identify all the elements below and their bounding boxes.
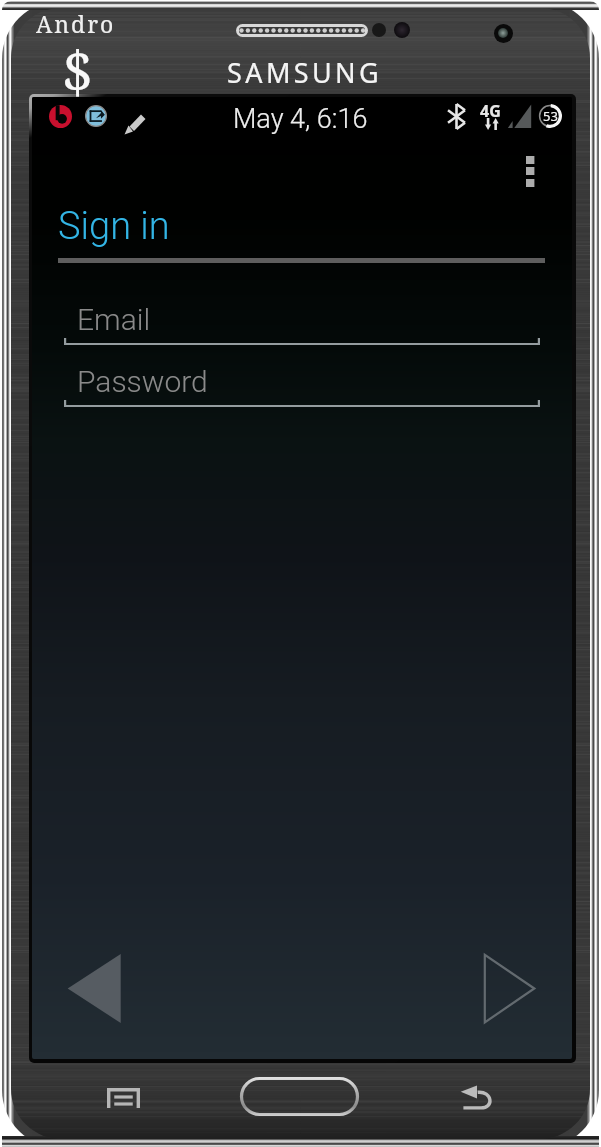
staticText: 4G — [480, 100, 501, 122]
staticText: SAMSUNG — [227, 54, 383, 91]
button[interactable]: More options — [504, 133, 572, 201]
button[interactable]: Home — [240, 1077, 359, 1116]
button[interactable]: Next — [483, 953, 536, 1025]
staticText: Email — [77, 302, 151, 337]
button[interactable]: Password — [64, 360, 540, 412]
staticText: $ — [62, 32, 94, 108]
staticText: May 4, 6:16 — [233, 103, 368, 135]
staticText: 53 — [543, 107, 558, 125]
button[interactable]: Menu — [107, 1088, 140, 1108]
staticText: Andro — [36, 8, 116, 39]
button[interactable]: Email — [64, 298, 540, 350]
staticText: Password — [77, 364, 208, 399]
button[interactable]: Previous — [66, 952, 121, 1025]
staticText: Sign in — [58, 204, 170, 249]
button[interactable]: Back — [460, 1085, 494, 1111]
